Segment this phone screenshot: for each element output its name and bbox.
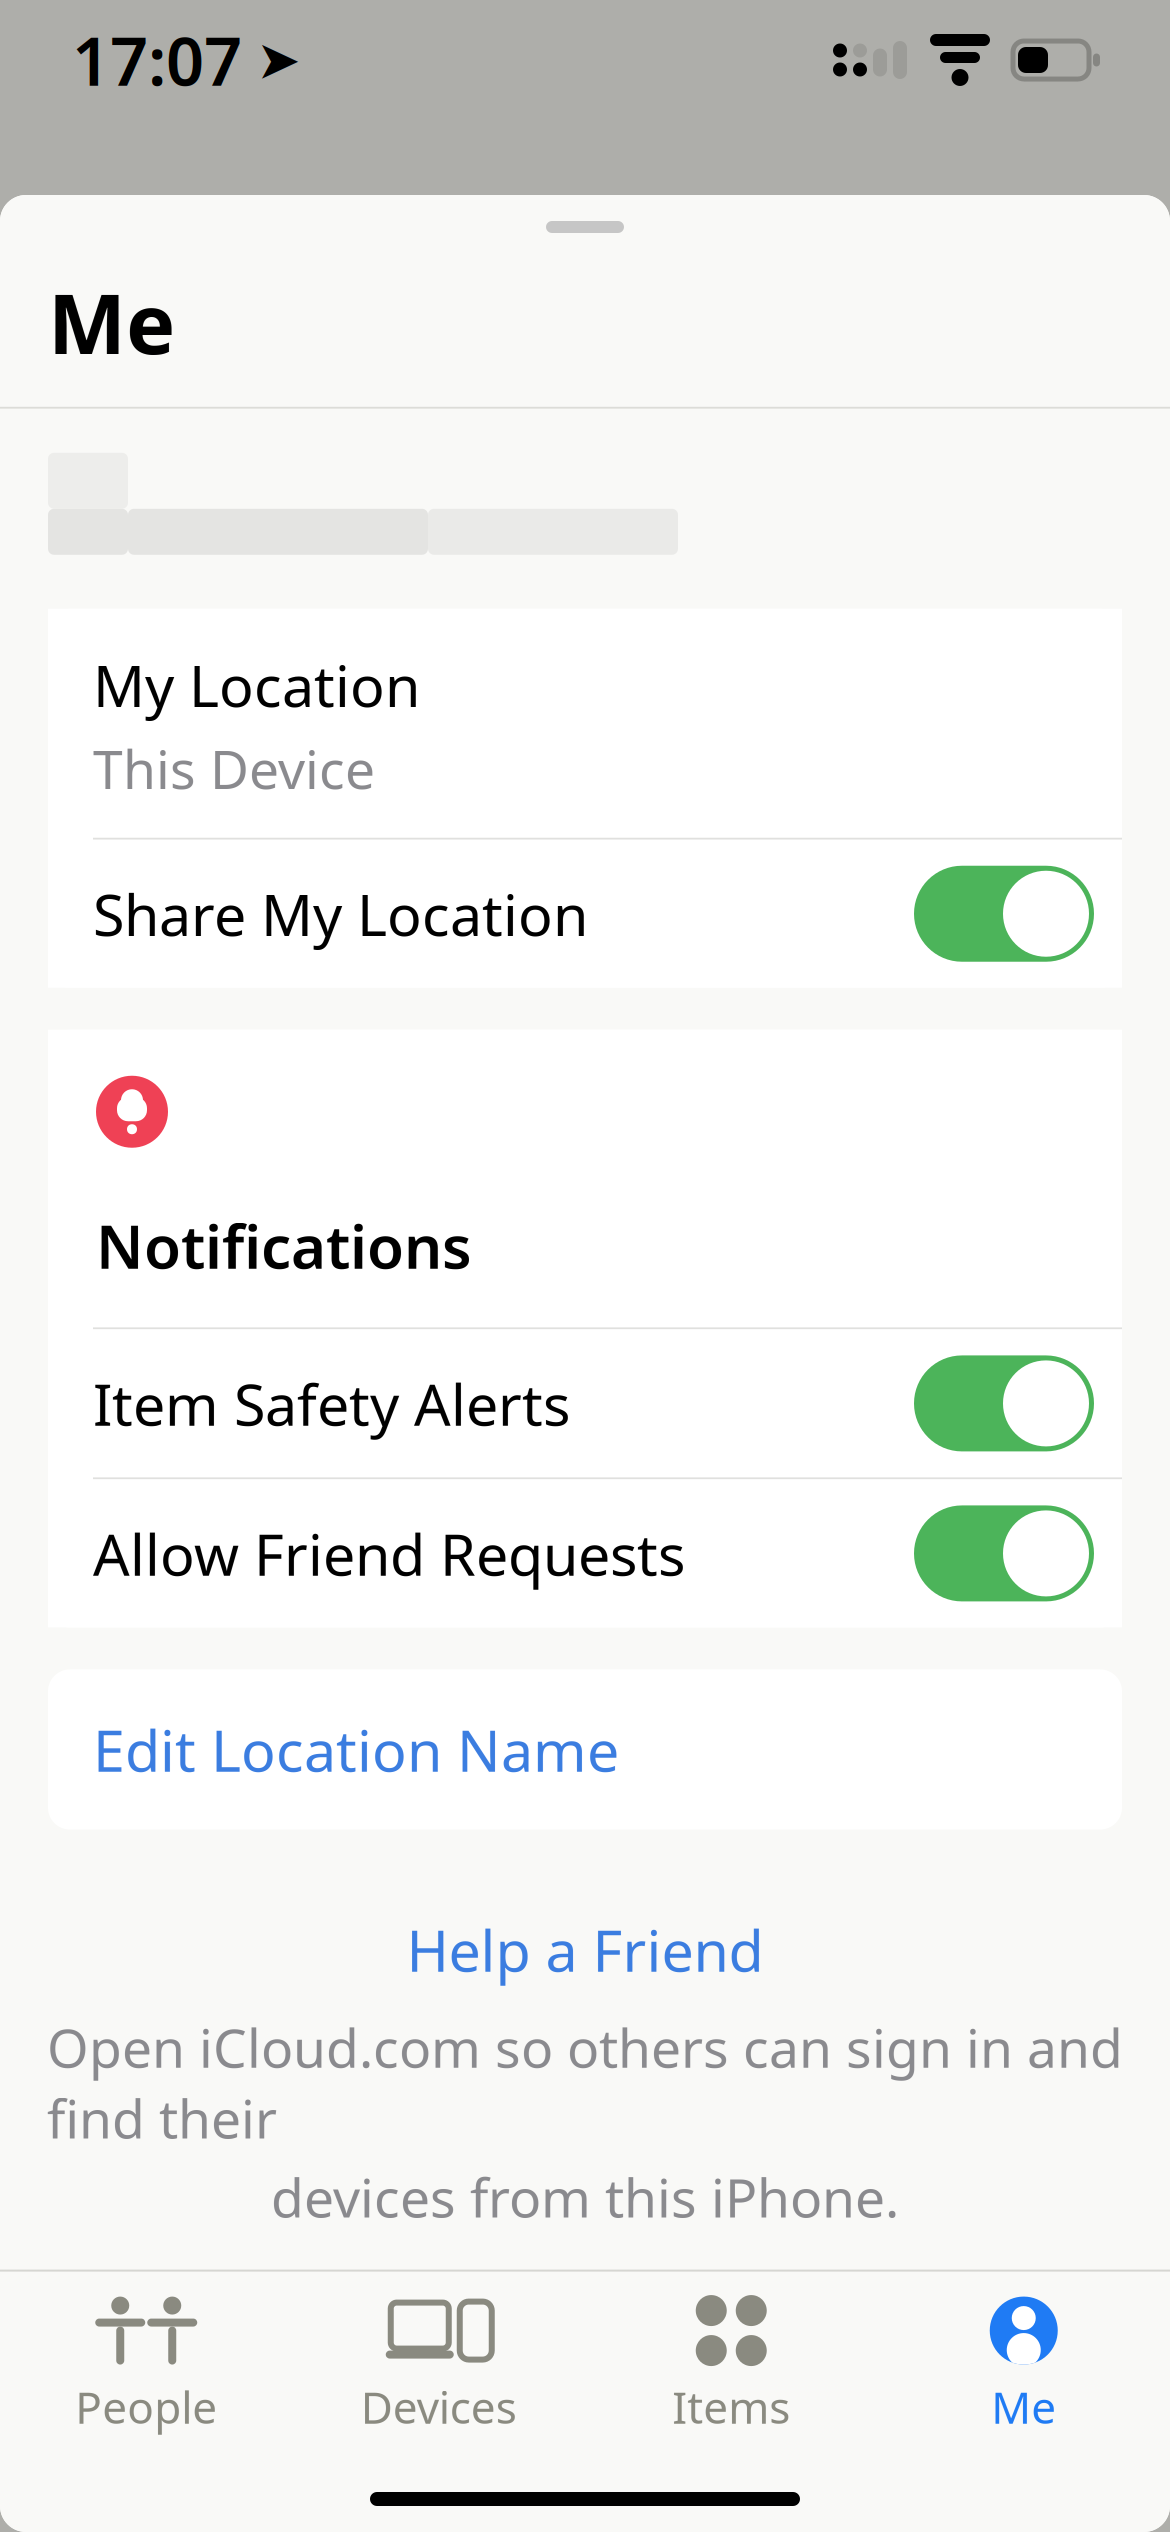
staticText: Notifications xyxy=(96,1206,472,1285)
staticText: 17:07 xyxy=(72,16,242,104)
button[interactable]: Devices xyxy=(292,2292,585,2440)
staticText: People xyxy=(75,2378,217,2436)
staticText: devices from this iPhone. xyxy=(271,2161,899,2232)
button[interactable]: Share My Location xyxy=(48,840,1122,988)
staticText: Items xyxy=(672,2378,790,2436)
button[interactable]: Edit Location Name xyxy=(48,1669,1122,1829)
staticText: Help a Friend xyxy=(406,1912,763,1988)
button[interactable]: Help a Friend xyxy=(380,1904,789,1996)
staticText: Devices xyxy=(361,2378,517,2436)
staticText: Edit Location Name xyxy=(93,1711,619,1787)
button[interactable]: People xyxy=(0,2292,292,2440)
staticText: Open iCloud.com so others can sign in an… xyxy=(47,2012,1123,2153)
button[interactable]: Items xyxy=(585,2292,877,2440)
staticText: Me xyxy=(991,2378,1056,2436)
button[interactable]: My Location xyxy=(48,609,1122,838)
button[interactable]: Item Safety Alerts xyxy=(48,1329,1122,1477)
staticText: Item Safety Alerts xyxy=(93,1365,570,1441)
staticText: ➤ xyxy=(256,30,301,90)
staticText: Me xyxy=(48,267,175,377)
staticText: My Location xyxy=(93,647,420,723)
staticText: Allow Friend Requests xyxy=(93,1515,685,1591)
button[interactable]: Allow Friend Requests xyxy=(48,1479,1122,1627)
staticText: This Device xyxy=(93,733,375,804)
button[interactable]: Me xyxy=(877,2292,1170,2440)
staticText: Share My Location xyxy=(93,876,588,952)
